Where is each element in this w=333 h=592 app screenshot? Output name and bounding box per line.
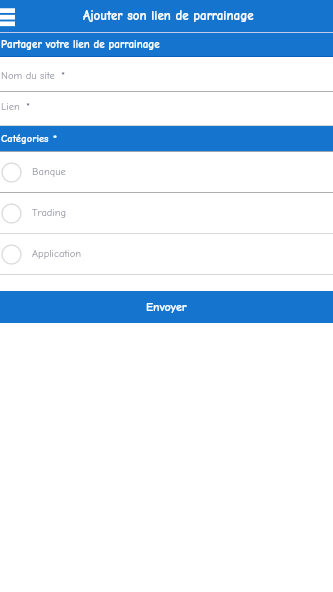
staticText: Nom du site (1, 70, 55, 82)
button[interactable]: Banque (0, 152, 333, 192)
staticText: Lien (1, 101, 20, 113)
button[interactable]: Nom du site (0, 57, 333, 91)
staticText: Catégories (1, 133, 49, 145)
staticText: Partager votre lien de parrainage (1, 38, 160, 51)
button[interactable]: Open navigation menu (0, 0, 22, 32)
staticText: Trading (32, 207, 67, 219)
button[interactable]: Partager votre lien de parrainage (0, 33, 333, 56)
staticText: Application (32, 248, 82, 260)
button[interactable]: Envoyer (0, 291, 333, 323)
staticText: * (26, 101, 31, 113)
staticText: Ajouter son lien de parrainage (83, 8, 254, 23)
staticText: * (53, 133, 57, 145)
staticText: Banque (32, 166, 66, 178)
button[interactable]: Application (0, 234, 333, 274)
button[interactable]: Trading (0, 193, 333, 233)
staticText: * (61, 70, 66, 82)
staticText: Envoyer (146, 300, 187, 314)
button[interactable]: Lien (0, 92, 333, 125)
